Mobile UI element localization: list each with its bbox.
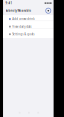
staticText: View daily stats: [12, 25, 31, 28]
button[interactable]: Add a new drink: [3, 15, 54, 23]
button[interactable]: View daily stats: [3, 23, 54, 30]
staticText: Settings & goals: [12, 32, 34, 36]
staticText: Add a new drink: [12, 17, 34, 21]
staticText: Sobriety Wearable: [6, 9, 32, 12]
button[interactable]: Profile: [45, 8, 51, 14]
staticText: 9:41: [6, 1, 13, 5]
button[interactable]: Settings & goals: [3, 30, 54, 38]
